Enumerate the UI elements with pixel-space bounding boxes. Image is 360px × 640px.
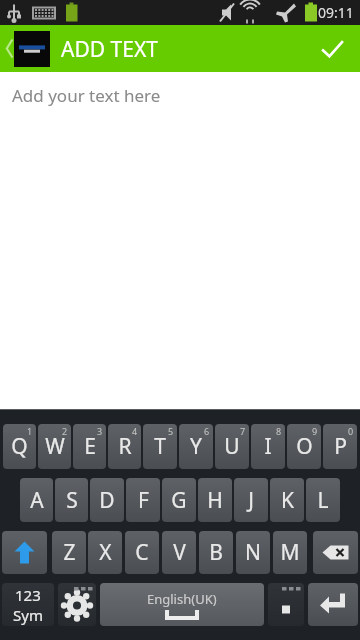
staticText: F xyxy=(138,486,149,515)
staticText: M xyxy=(280,538,300,567)
button[interactable]: G xyxy=(162,478,196,522)
button[interactable]: W xyxy=(38,424,71,469)
staticText: D xyxy=(99,486,115,515)
staticText: T xyxy=(154,432,166,461)
button[interactable]: D xyxy=(90,478,124,522)
button[interactable]: Q xyxy=(3,424,36,469)
button[interactable]: Shift xyxy=(2,531,47,574)
staticText: A xyxy=(30,486,44,515)
staticText: Y xyxy=(190,432,202,461)
button[interactable]: M xyxy=(273,531,307,574)
staticText: P xyxy=(334,432,347,461)
button[interactable]: P xyxy=(323,424,357,469)
staticText: O xyxy=(296,432,313,461)
button[interactable]: Enter xyxy=(308,583,358,626)
button[interactable]: Period xyxy=(268,583,304,626)
button[interactable]: ADD TEXT xyxy=(14,31,158,67)
staticText: N xyxy=(245,538,261,567)
staticText: 8 xyxy=(276,425,282,437)
button[interactable]: C xyxy=(125,531,159,574)
button[interactable]: I xyxy=(251,424,285,469)
button[interactable]: U xyxy=(215,424,249,469)
button[interactable]: F xyxy=(126,478,160,522)
button[interactable]: Keyboard settings xyxy=(58,583,96,626)
button[interactable]: H xyxy=(198,478,232,522)
staticText: H xyxy=(207,486,223,515)
button[interactable]: L xyxy=(306,478,340,522)
button[interactable]: R xyxy=(108,424,141,469)
staticText: 6 xyxy=(204,425,210,437)
staticText: K xyxy=(281,486,294,515)
button[interactable]: Back xyxy=(0,25,20,72)
button[interactable]: V xyxy=(162,531,196,574)
staticText: E xyxy=(84,432,96,461)
button[interactable]: J xyxy=(234,478,268,522)
staticText: 0 xyxy=(348,425,354,437)
staticText: English(UK) xyxy=(147,590,217,608)
staticText: 2 xyxy=(62,425,68,437)
button[interactable]: N xyxy=(236,531,270,574)
staticText: 123 xyxy=(15,585,41,605)
button[interactable]: Done xyxy=(304,25,360,72)
button[interactable]: S xyxy=(55,478,88,522)
staticText: V xyxy=(173,538,186,567)
staticText: L xyxy=(317,486,329,515)
button[interactable]: Y xyxy=(179,424,213,469)
staticText: ADD TEXT xyxy=(61,35,158,64)
staticText: 4 xyxy=(132,425,138,437)
staticText: C xyxy=(135,538,149,567)
staticText: 5 xyxy=(168,425,174,437)
staticText: B xyxy=(209,538,223,567)
staticText: R xyxy=(118,432,132,461)
staticText: 9 xyxy=(312,425,318,437)
staticText: J xyxy=(248,486,254,515)
staticText: Z xyxy=(63,538,76,567)
button[interactable]: T xyxy=(143,424,177,469)
button[interactable]: E xyxy=(73,424,106,469)
button[interactable]: Backspace xyxy=(313,531,358,574)
staticText: S xyxy=(66,486,78,515)
staticText: 3 xyxy=(97,425,103,437)
staticText: 09:11 xyxy=(318,3,354,22)
staticText: X xyxy=(99,538,112,567)
staticText: I xyxy=(264,432,272,461)
staticText: G xyxy=(171,486,187,515)
staticText: U xyxy=(224,432,240,461)
button[interactable]: X xyxy=(88,531,122,574)
staticText: 7 xyxy=(240,425,246,437)
staticText: Q xyxy=(11,432,28,461)
staticText: W xyxy=(45,432,65,461)
staticText: 1 xyxy=(27,425,33,437)
button[interactable]: Space xyxy=(100,583,264,626)
button[interactable]: A xyxy=(20,478,53,522)
staticText: Sym xyxy=(13,605,43,625)
button[interactable]: 123 xyxy=(2,583,54,626)
button[interactable]: K xyxy=(270,478,304,522)
button[interactable]: O xyxy=(287,424,321,469)
button[interactable]: B xyxy=(199,531,233,574)
staticText: Add your text here xyxy=(12,84,161,107)
button[interactable]: Z xyxy=(52,531,86,574)
